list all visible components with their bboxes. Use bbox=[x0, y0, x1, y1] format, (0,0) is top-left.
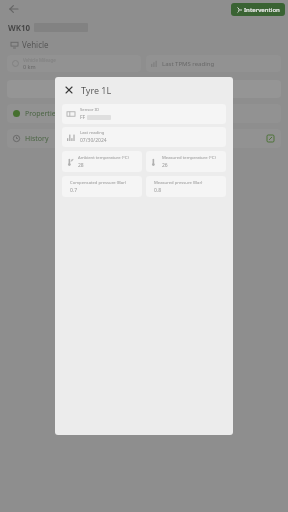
button[interactable]: Measured temperature (°C) bbox=[146, 151, 226, 172]
button[interactable]: Last reading bbox=[62, 127, 226, 147]
button[interactable]: Intervention bbox=[231, 3, 285, 16]
staticText: 26 bbox=[162, 162, 168, 169]
button[interactable]: Open history bbox=[266, 134, 275, 143]
button[interactable]: Properties bbox=[7, 104, 281, 123]
staticText: History bbox=[25, 134, 49, 144]
staticText: Last reading bbox=[80, 130, 105, 136]
button[interactable]: Close bbox=[63, 84, 75, 96]
staticText: Vehicle bbox=[22, 39, 49, 50]
button[interactable]: Sensor ID bbox=[62, 104, 226, 124]
button[interactable]: Back bbox=[6, 1, 22, 17]
staticText: Ambient temperature (°C) bbox=[78, 155, 129, 161]
staticText: FF bbox=[80, 114, 86, 121]
staticText: Measured pressure (Bar) bbox=[154, 180, 203, 186]
staticText: Measured temperature (°C) bbox=[162, 155, 216, 161]
staticText: 0.7 bbox=[70, 187, 78, 194]
staticText: WK10 bbox=[8, 22, 31, 33]
button[interactable]: Measured pressure (Bar) bbox=[146, 176, 226, 197]
button[interactable]: Compensated pressure (Bar) bbox=[62, 176, 142, 197]
staticText: Compensated pressure (Bar) bbox=[70, 180, 127, 186]
button[interactable]: Vehicle Mileage bbox=[7, 55, 141, 72]
button[interactable]: Ambient temperature (°C) bbox=[62, 151, 142, 172]
staticText: Properties bbox=[25, 109, 59, 119]
staticText: Sensor ID bbox=[80, 107, 100, 113]
staticText: Vehicle Mileage bbox=[23, 57, 56, 63]
button[interactable]: Last TPMS reading bbox=[146, 55, 281, 72]
staticText: 07/30/2024 bbox=[80, 137, 107, 144]
staticText: Last TPMS reading bbox=[162, 60, 215, 68]
staticText: Tyre 1L bbox=[81, 84, 112, 96]
staticText: 0.8 bbox=[154, 187, 162, 194]
button[interactable]: History bbox=[7, 129, 281, 148]
staticText: 0 km bbox=[23, 63, 36, 70]
staticText: 28 bbox=[78, 162, 84, 169]
staticText: Intervention bbox=[244, 6, 280, 14]
